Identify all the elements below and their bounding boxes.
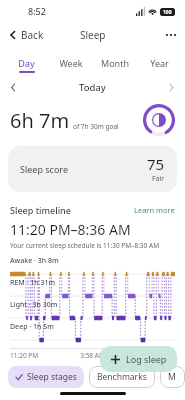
staticText: Day bbox=[18, 57, 35, 69]
staticText: 11:20 PM–8:36 AM bbox=[10, 220, 131, 239]
staticText: 75 bbox=[147, 154, 165, 174]
staticText: Log sleep bbox=[126, 353, 167, 365]
button[interactable]: Next day bbox=[158, 79, 185, 96]
staticText: Sleep timeline bbox=[10, 204, 134, 216]
staticText: 100 bbox=[163, 9, 172, 16]
button[interactable]: Month bbox=[93, 54, 137, 76]
staticText: Back bbox=[21, 28, 44, 42]
staticText: Benchmarks bbox=[97, 371, 147, 383]
button[interactable]: Year bbox=[137, 54, 181, 76]
staticText: REM · 1h 31m bbox=[10, 278, 56, 288]
staticText: 6h bbox=[10, 107, 39, 134]
staticText: Year bbox=[150, 57, 169, 69]
staticText: Month bbox=[101, 57, 129, 69]
staticText: 8:52 bbox=[28, 5, 46, 17]
staticText: Sleep score bbox=[20, 163, 68, 175]
staticText: Learn more bbox=[134, 205, 175, 215]
staticText: 3:58 AM bbox=[65, 351, 120, 360]
staticText: Fair bbox=[152, 174, 165, 184]
staticText: 11:20 PM bbox=[10, 351, 65, 360]
staticText: 8:36 AM bbox=[120, 351, 175, 360]
button[interactable]: Learn more bbox=[134, 205, 175, 215]
staticText: Deep · 1h 5m bbox=[10, 322, 54, 332]
button[interactable]: Day bbox=[4, 54, 49, 76]
staticText: 7m bbox=[39, 107, 70, 134]
staticText: Sleep bbox=[80, 28, 106, 42]
staticText: Your current sleep schedule is 11:30 PM–… bbox=[10, 241, 160, 250]
staticText: More bbox=[168, 371, 177, 383]
button[interactable]: Week bbox=[49, 54, 93, 76]
staticText: Light · 3h 30m bbox=[10, 300, 58, 310]
staticText: Week bbox=[59, 57, 83, 69]
button[interactable]: More bbox=[160, 366, 185, 388]
button[interactable]: Benchmarks bbox=[89, 366, 155, 388]
button[interactable]: More options bbox=[157, 22, 185, 48]
button[interactable]: Previous day bbox=[0, 79, 27, 96]
button[interactable]: Sleep score bbox=[8, 146, 177, 192]
button[interactable]: Back bbox=[0, 24, 50, 46]
staticText: Awake · 3h 8m bbox=[10, 256, 59, 266]
staticText: of 7h 30m goal bbox=[73, 122, 119, 131]
button[interactable]: Log sleep bbox=[100, 346, 177, 372]
button[interactable]: Sleep stages bbox=[8, 366, 84, 388]
staticText: Today bbox=[79, 81, 106, 94]
staticText: Sleep stages bbox=[27, 371, 77, 383]
